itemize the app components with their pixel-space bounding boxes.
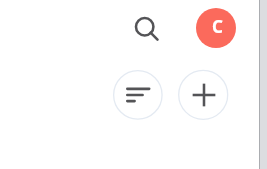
button[interactable]: Search (128, 10, 161, 43)
staticText: C (212, 15, 223, 38)
button[interactable]: Add (178, 70, 228, 120)
button[interactable]: Sort (113, 70, 162, 119)
button[interactable]: C (196, 8, 236, 48)
